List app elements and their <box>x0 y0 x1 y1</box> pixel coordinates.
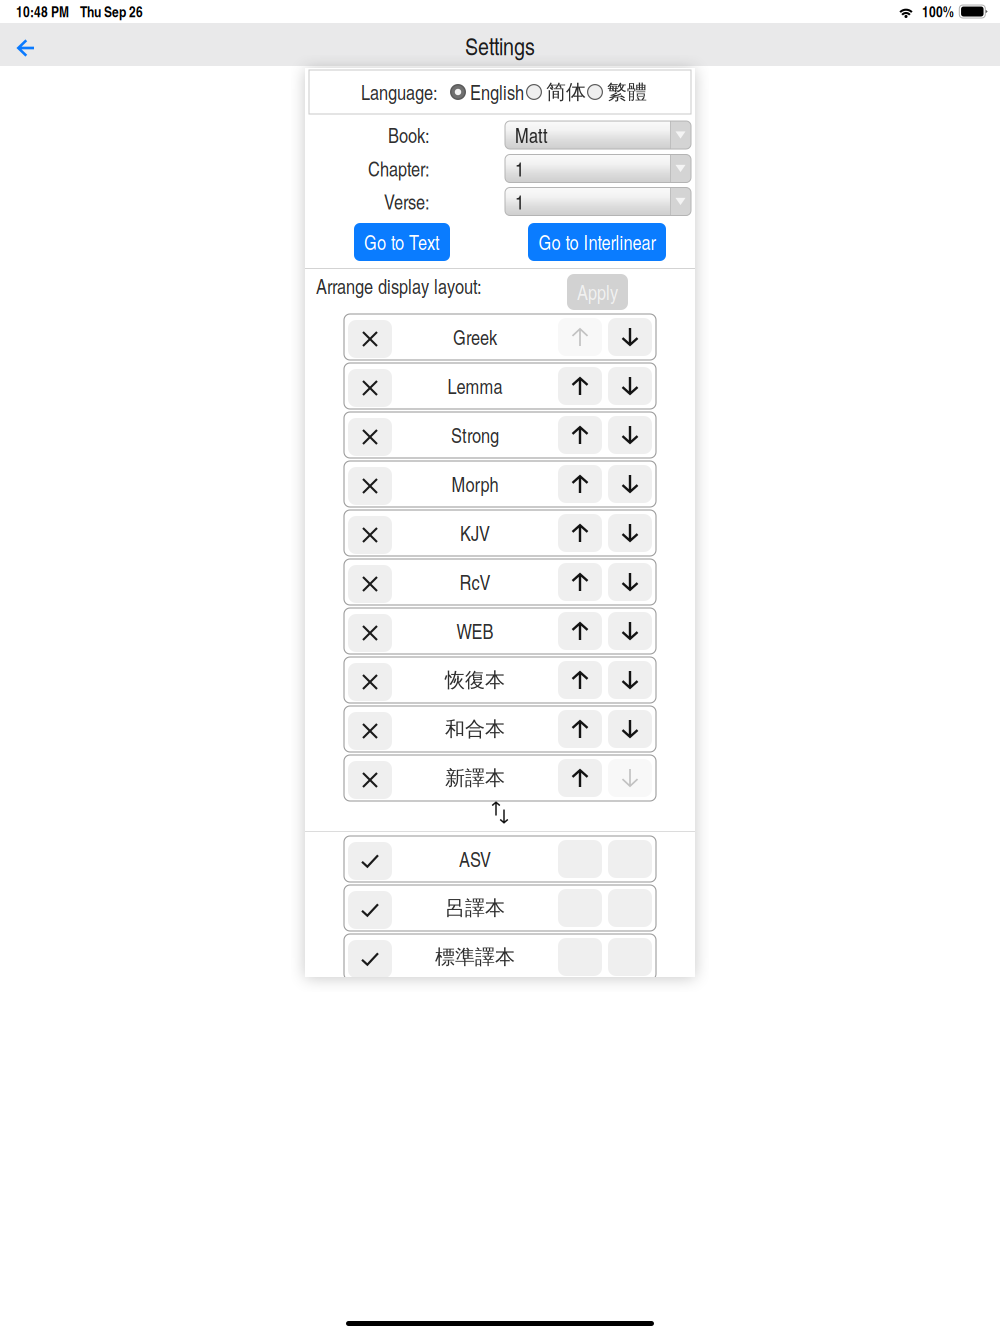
button[interactable]: Move 和合本 down <box>608 710 652 748</box>
staticText: Go to Interlinear <box>538 228 655 256</box>
button[interactable]: Add 呂譯本 <box>348 891 392 929</box>
button[interactable]: Remove Strong <box>348 418 392 456</box>
staticText: ASV <box>459 845 491 873</box>
button[interactable]: Remove KJV <box>348 516 392 554</box>
button[interactable]: Move 新譯本 up <box>558 759 602 797</box>
staticText: 1 <box>515 188 524 215</box>
button[interactable]: Move 恢復本 down <box>608 661 652 699</box>
button[interactable]: Remove Lemma <box>348 369 392 407</box>
button[interactable]: Apply <box>567 274 628 310</box>
staticText: Go to Text <box>364 228 440 256</box>
staticText: RcV <box>459 568 490 596</box>
button[interactable]: Go to Interlinear <box>528 223 666 261</box>
staticText: WEB <box>456 617 493 645</box>
staticText: 100% <box>922 1 954 22</box>
staticText: Verse: <box>384 188 430 215</box>
button[interactable]: Select 1 <box>505 154 691 182</box>
button[interactable]: Back <box>0 28 52 68</box>
staticText: 呂譯本 <box>445 895 505 921</box>
button[interactable]: Go to Text <box>354 223 450 261</box>
staticText: Language: <box>361 78 438 106</box>
button[interactable]: Move Morph down <box>608 465 652 503</box>
button[interactable]: Move WEB down <box>608 612 652 650</box>
button[interactable]: English <box>450 78 524 106</box>
button[interactable]: Move RcV up <box>558 563 602 601</box>
button[interactable]: Move 新譯本 down <box>608 759 652 797</box>
button[interactable]: Move Strong down <box>608 416 652 454</box>
button[interactable]: Remove RcV <box>348 565 392 603</box>
button[interactable]: Move 恢復本 up <box>558 661 602 699</box>
staticText: Matt <box>515 121 548 149</box>
button[interactable]: 繁體 <box>587 79 647 105</box>
staticText: 標準譯本 <box>435 944 515 970</box>
button[interactable]: Remove Morph <box>348 467 392 505</box>
button[interactable]: Add ASV <box>348 842 392 880</box>
staticText: English <box>470 78 524 106</box>
staticText: Apply <box>577 278 618 306</box>
button[interactable]: Move WEB up <box>558 612 602 650</box>
staticText: 1 <box>515 155 524 182</box>
button[interactable]: Remove 新譯本 <box>348 761 392 799</box>
staticText: Arrange display layout: <box>316 272 482 300</box>
staticText: 10:48 PM <box>16 1 69 22</box>
staticText: Morph <box>451 470 498 498</box>
staticText: Book: <box>388 121 430 149</box>
button[interactable]: Remove Greek <box>348 320 392 358</box>
button[interactable]: Move Lemma down <box>608 367 652 405</box>
button[interactable]: Add 標準譯本 <box>348 940 392 978</box>
staticText: Strong <box>451 421 499 449</box>
button[interactable]: Move Greek down <box>608 318 652 356</box>
button[interactable]: Move Strong up <box>558 416 602 454</box>
button[interactable]: Move Morph up <box>558 465 602 503</box>
button[interactable]: Move RcV down <box>608 563 652 601</box>
staticText: 和合本 <box>445 716 505 742</box>
staticText: 恢復本 <box>445 667 505 693</box>
staticText: KJV <box>460 519 490 547</box>
button[interactable]: Remove WEB <box>348 614 392 652</box>
button[interactable]: 简体 <box>526 79 586 105</box>
button[interactable]: Move KJV down <box>608 514 652 552</box>
button[interactable]: Remove 和合本 <box>348 712 392 750</box>
button[interactable]: Select Matt <box>505 121 691 149</box>
staticText: 简体 <box>546 79 586 105</box>
button[interactable]: Move 和合本 up <box>558 710 602 748</box>
button[interactable]: Move Lemma up <box>558 367 602 405</box>
staticText: Lemma <box>447 372 502 400</box>
staticText: Settings <box>465 29 535 62</box>
staticText: Greek <box>453 323 497 351</box>
button[interactable]: Move Greek up <box>558 318 602 356</box>
button[interactable]: Remove 恢復本 <box>348 663 392 701</box>
staticText: 繁體 <box>607 79 647 105</box>
staticText: Thu Sep 26 <box>80 1 143 22</box>
button[interactable]: Select 1 <box>505 187 691 215</box>
staticText: Chapter: <box>368 155 430 182</box>
staticText: 新譯本 <box>445 765 505 791</box>
button[interactable]: Move KJV up <box>558 514 602 552</box>
